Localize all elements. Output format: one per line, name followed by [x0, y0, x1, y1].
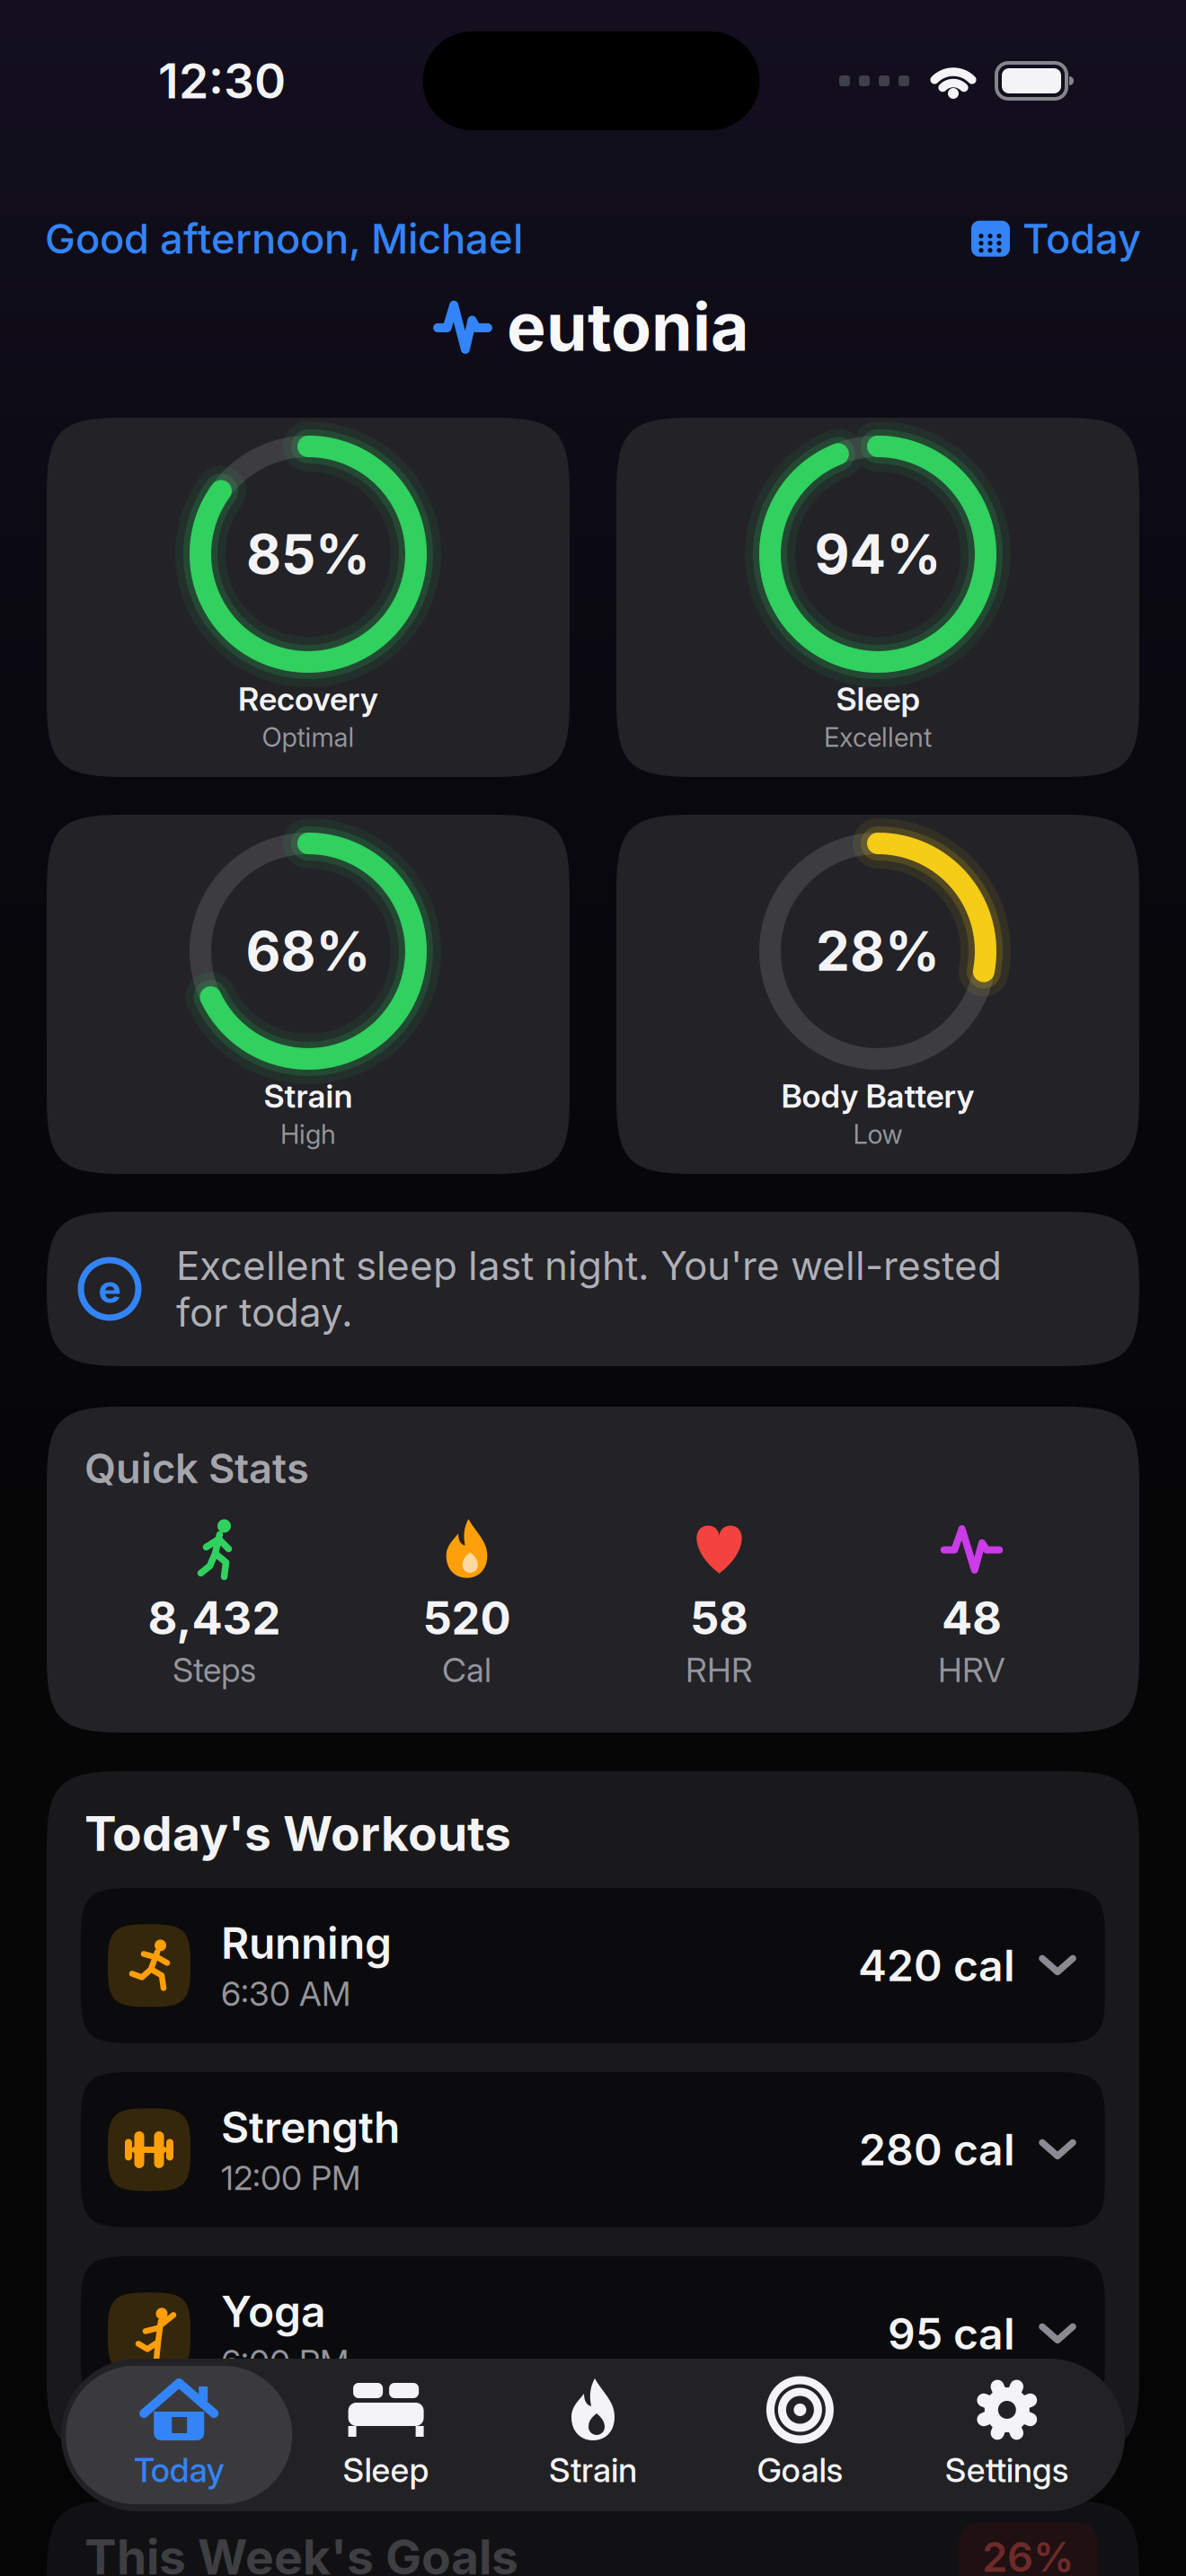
- staticText: 26%: [982, 2533, 1075, 2576]
- staticText: 48: [942, 1591, 1002, 1645]
- staticText: Sleep: [343, 2450, 429, 2490]
- staticText: 94%: [814, 522, 941, 586]
- staticText: 420 cal: [858, 1940, 1015, 1991]
- staticText: Good afternoon, Michael: [45, 215, 523, 263]
- staticText: eutonia: [507, 288, 749, 366]
- staticText: Cal: [442, 1650, 491, 1690]
- button[interactable]: Yoga: [81, 2256, 1105, 2412]
- staticText: Settings: [945, 2450, 1069, 2490]
- staticText: Goals: [757, 2450, 843, 2490]
- staticText: Yoga: [221, 2286, 326, 2337]
- staticText: 280 cal: [859, 2124, 1015, 2175]
- staticText: Excellent: [824, 722, 932, 753]
- button[interactable]: Running: [81, 1888, 1105, 2043]
- staticText: Optimal: [262, 722, 354, 753]
- staticText: 12:30: [158, 53, 286, 109]
- button[interactable]: Goals: [697, 2359, 904, 2511]
- staticText: 95 cal: [888, 2308, 1015, 2359]
- button[interactable]: Today: [75, 2359, 282, 2511]
- staticText: 58: [690, 1591, 748, 1645]
- staticText: This Week's Goals: [84, 2529, 518, 2576]
- staticText: Sleep: [836, 680, 920, 718]
- staticText: 6:30 AM: [221, 1974, 350, 2013]
- button[interactable]: Strength: [81, 2072, 1105, 2227]
- staticText: 85%: [246, 522, 370, 586]
- staticText: Steps: [173, 1650, 256, 1690]
- button[interactable]: Today: [971, 215, 1141, 263]
- staticText: 12:00 PM: [221, 2158, 360, 2198]
- staticText: Low: [853, 1119, 903, 1150]
- button[interactable]: Strain: [489, 2359, 697, 2511]
- staticText: Recovery: [238, 680, 378, 718]
- staticText: 8,432: [148, 1591, 281, 1645]
- staticText: Today's Workouts: [84, 1805, 511, 1862]
- staticText: Running: [221, 1918, 392, 1969]
- button[interactable]: Sleep: [282, 2359, 489, 2511]
- staticText: Today: [1022, 215, 1141, 263]
- staticText: HRV: [938, 1650, 1005, 1690]
- staticText: Today: [134, 2450, 224, 2490]
- staticText: 28%: [816, 919, 940, 983]
- staticText: 6:00 PM: [221, 2342, 349, 2382]
- staticText: 68%: [246, 919, 371, 983]
- staticText: Body Battery: [781, 1077, 974, 1115]
- staticText: RHR: [686, 1650, 753, 1690]
- staticText: Strain: [264, 1077, 353, 1115]
- staticText: Strain: [549, 2450, 637, 2490]
- staticText: High: [280, 1119, 336, 1150]
- staticText: e: [98, 1266, 121, 1311]
- staticText: Excellent sleep last night. You're well-…: [176, 1242, 1002, 1336]
- staticText: Quick Stats: [84, 1444, 309, 1492]
- button[interactable]: Settings: [904, 2359, 1111, 2511]
- staticText: Strength: [221, 2102, 400, 2153]
- staticText: 520: [423, 1591, 511, 1645]
